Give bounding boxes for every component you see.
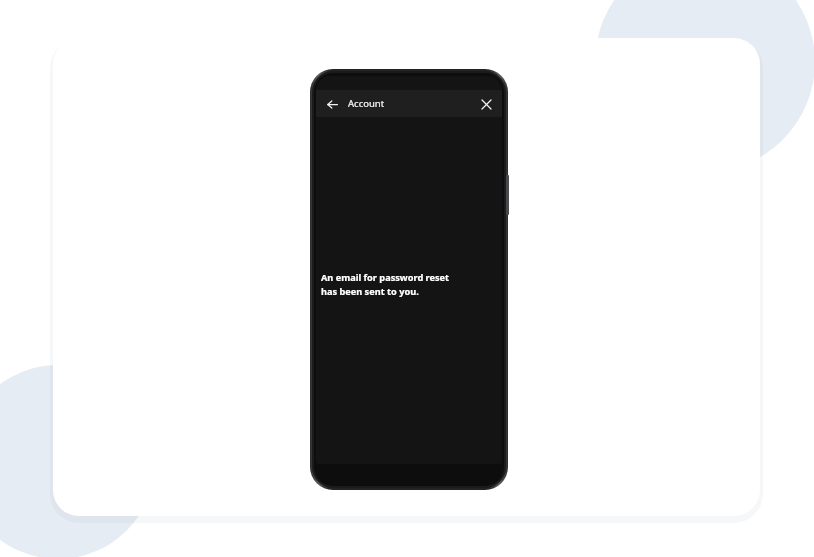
staticText: has been sent to you. [321, 285, 419, 298]
staticText: An email for password reset [321, 271, 450, 284]
button[interactable]: Back [321, 93, 343, 115]
staticText: Account [348, 97, 385, 110]
button[interactable]: Close [476, 94, 496, 114]
